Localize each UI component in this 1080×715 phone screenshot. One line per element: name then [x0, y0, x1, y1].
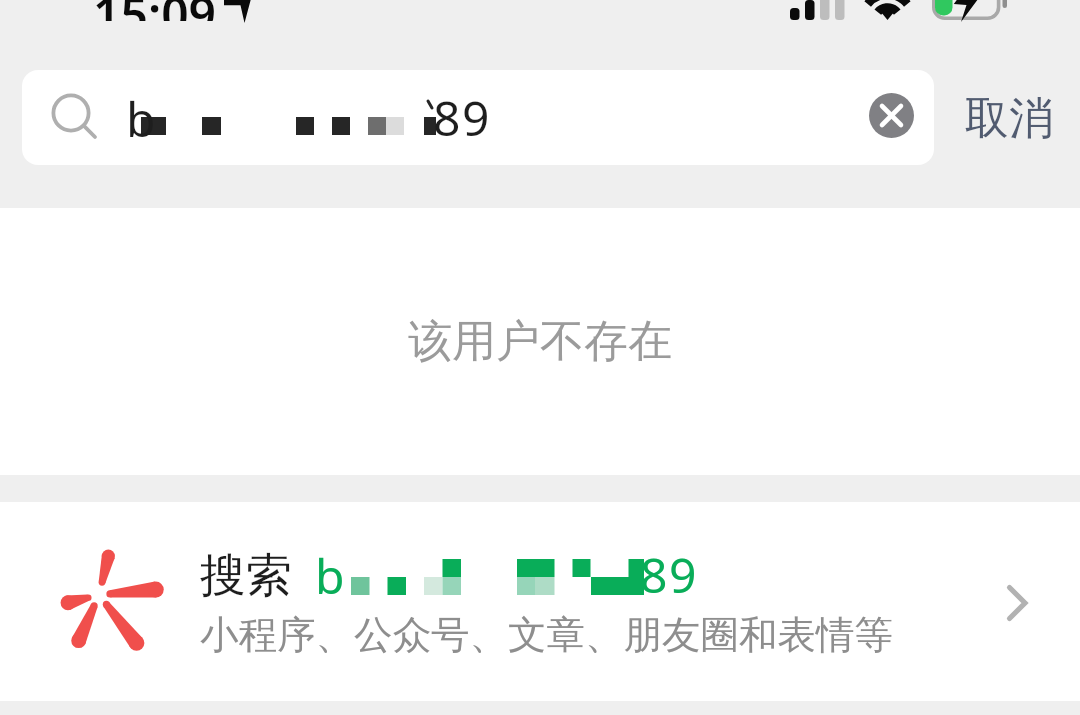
button[interactable]: 搜索 [0, 502, 1080, 701]
button[interactable]: b [22, 70, 934, 165]
staticText: 89 [640, 542, 699, 607]
button[interactable]: Clear text [869, 93, 914, 138]
staticText: 该用户不存在 [408, 314, 672, 369]
staticText: 15:09 [93, 0, 217, 21]
staticText: 小程序、公众号、文章、朋友圈和表情等 [200, 611, 893, 660]
staticText: b [126, 86, 156, 151]
staticText: b [315, 543, 345, 608]
button[interactable]: 取消 [950, 72, 1068, 165]
staticText: 89 [433, 85, 492, 150]
staticText: 取消 [965, 91, 1053, 146]
button[interactable]: Open WeChat Search [980, 557, 1060, 647]
staticText: 搜索 [200, 547, 292, 605]
